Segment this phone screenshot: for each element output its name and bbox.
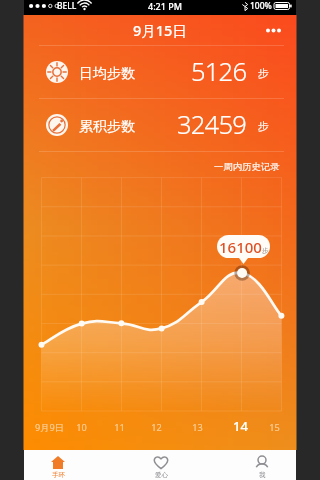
staticText: 100% [250, 0, 272, 12]
staticText: 9月9日 [35, 421, 64, 434]
staticText: 11 [114, 421, 125, 434]
staticText: 12 [151, 421, 162, 434]
staticText: 步 [258, 119, 269, 133]
staticText: 日均步数 [79, 65, 135, 83]
staticText: 4:21 PM [148, 0, 182, 12]
staticText: 步 [262, 247, 269, 255]
staticText: 一周内历史记录 [214, 161, 280, 173]
staticText: 我 [259, 471, 266, 479]
button[interactable]: 我 [237, 450, 287, 480]
staticText: 步 [258, 66, 269, 80]
button[interactable]: More options [255, 17, 291, 43]
staticText: 累积步数 [79, 118, 135, 136]
staticText: 13 [192, 421, 203, 434]
button[interactable]: 手环 [33, 450, 83, 480]
staticText: 15 [269, 421, 280, 434]
staticText: 手环 [52, 471, 65, 479]
staticText: 32459 [177, 107, 247, 142]
staticText: 16100 [219, 237, 262, 257]
staticText: 9月15日 [133, 20, 187, 40]
button[interactable]: 爱心 [136, 450, 186, 480]
button[interactable]: 日均步数 [24, 45, 296, 98]
staticText: 5126 [191, 54, 247, 89]
button[interactable]: 累积步数 [24, 98, 296, 151]
staticText: 爱心 [155, 471, 168, 479]
staticText: 10 [76, 421, 87, 434]
staticText: 14 [233, 417, 248, 435]
staticText: BELL [57, 0, 77, 12]
